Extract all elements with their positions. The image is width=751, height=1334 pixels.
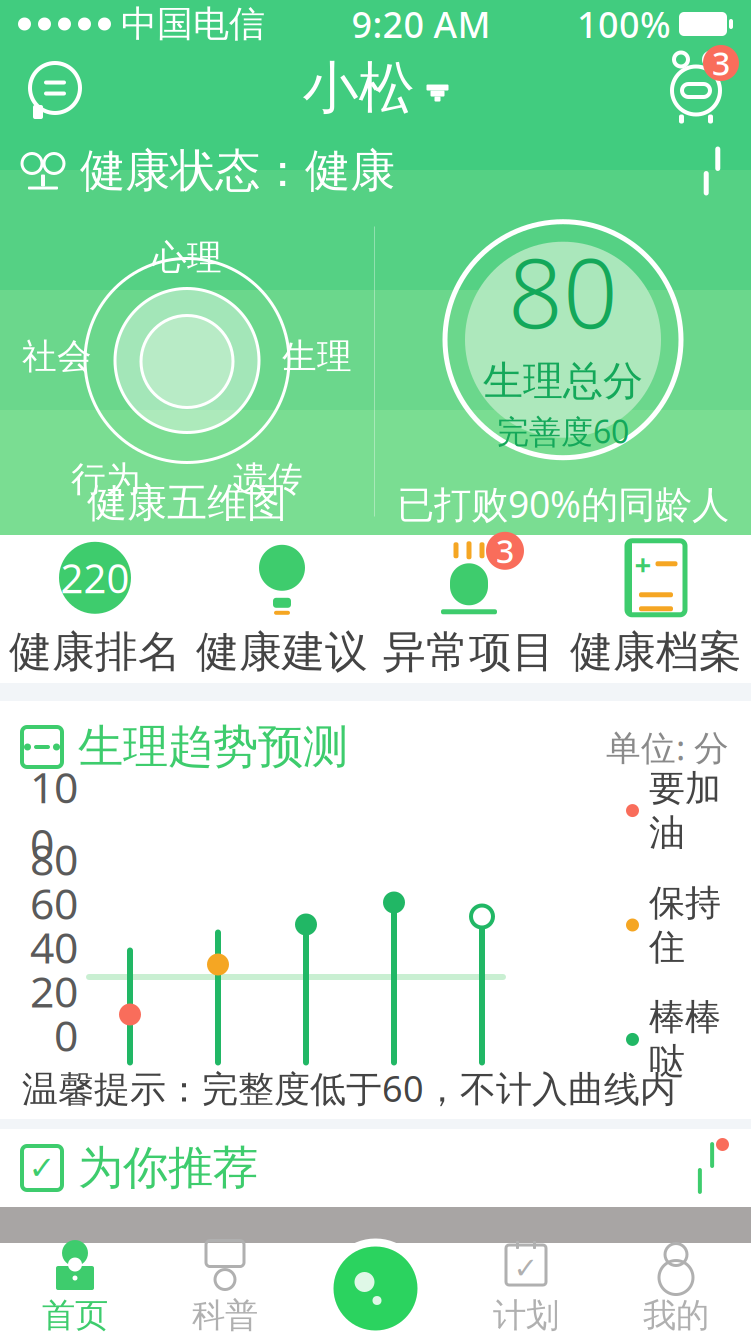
staticText: 健康排名 xyxy=(9,626,181,678)
staticText: 健康档案 xyxy=(570,626,742,678)
staticText: 健康状态：健康 xyxy=(80,143,395,199)
staticText: 心理 xyxy=(152,236,222,279)
staticText: 健康五维图 xyxy=(87,478,287,527)
button[interactable]: 3 xyxy=(375,535,562,683)
button[interactable]: + xyxy=(562,535,749,683)
staticText: 保持住 xyxy=(649,881,721,969)
button[interactable]: 记录 xyxy=(300,1243,451,1334)
button[interactable]: 我的 xyxy=(601,1243,751,1334)
staticText: 80 xyxy=(30,831,78,887)
staticText: 为你推荐 xyxy=(78,1140,258,1196)
staticText: 社会 xyxy=(22,335,92,378)
staticText: 我的 xyxy=(643,1295,709,1334)
staticText: 220 xyxy=(60,551,129,604)
staticText: 60 xyxy=(30,875,78,931)
staticText: 9:20 AM xyxy=(351,0,490,48)
staticText: 遗传 xyxy=(233,458,303,500)
staticText: ✓ xyxy=(513,1251,538,1285)
staticText: 生理总分 xyxy=(483,357,643,406)
staticText: ✓ xyxy=(28,1150,55,1186)
staticText: 生理趋势预测 xyxy=(78,719,348,775)
button[interactable]: 健康状态：健康 xyxy=(0,128,751,214)
staticText: 3 xyxy=(712,42,730,84)
staticText: 100% xyxy=(577,0,671,48)
staticText: 单位: 分 xyxy=(606,724,729,770)
staticText: 行为 xyxy=(71,458,141,500)
staticText: 中国电信 xyxy=(121,2,265,46)
staticText: 20 xyxy=(30,963,78,1019)
staticText: 计划 xyxy=(493,1295,559,1334)
button[interactable]: 健康建议 xyxy=(188,535,375,683)
staticText: 异常项目 xyxy=(383,626,555,678)
button[interactable]: ✓ xyxy=(0,1129,751,1207)
staticText: 小松 xyxy=(302,54,414,122)
button[interactable]: 220 xyxy=(1,535,188,683)
staticText: 3 xyxy=(496,529,514,572)
staticText: 健康建议 xyxy=(196,626,368,678)
staticText: 完善度60 xyxy=(497,410,629,452)
staticText: 生理 xyxy=(282,335,352,378)
button[interactable]: 小松 xyxy=(292,53,458,123)
staticText: 首页 xyxy=(42,1295,108,1334)
button[interactable]: 首页 xyxy=(0,1243,150,1334)
staticText: 棒棒哒 xyxy=(649,995,721,1084)
staticText: 0 xyxy=(54,1007,78,1063)
staticText: 科普 xyxy=(192,1295,258,1334)
staticText: 已打败90%的同龄人 xyxy=(397,479,729,528)
staticText: 要加油 xyxy=(649,766,721,855)
button[interactable]: ✓ xyxy=(451,1243,601,1334)
staticText: 80 xyxy=(508,227,618,355)
staticText: 温馨提示：完整度低于60，不计入曲线内 xyxy=(22,1064,676,1112)
staticText: 100 xyxy=(30,758,78,872)
staticText: 40 xyxy=(30,919,78,975)
button[interactable]: 消息 xyxy=(16,53,94,123)
button[interactable]: 提醒 xyxy=(657,53,735,123)
staticText: + xyxy=(634,544,651,583)
button[interactable]: 科普 xyxy=(150,1243,300,1334)
